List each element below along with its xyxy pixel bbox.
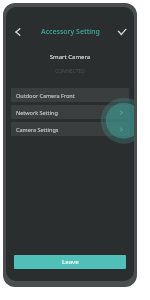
staticText: Accessory Setting <box>41 27 100 37</box>
staticText: CONNECTED <box>6 68 134 75</box>
button[interactable]: Camera Settings <box>11 122 129 136</box>
button[interactable]: Confirm <box>114 24 130 40</box>
staticText: Outdoor Camera Front <box>16 92 75 99</box>
button[interactable]: Back <box>10 24 26 40</box>
staticText: Camera Settings <box>16 126 59 133</box>
staticText: Smart Camera <box>6 53 134 61</box>
button[interactable]: Network Setting <box>11 105 129 119</box>
button[interactable]: Leave <box>14 255 126 269</box>
staticText: Network Setting <box>16 109 58 116</box>
staticText: Leave <box>62 258 79 266</box>
button[interactable]: Outdoor Camera Front <box>11 88 129 102</box>
